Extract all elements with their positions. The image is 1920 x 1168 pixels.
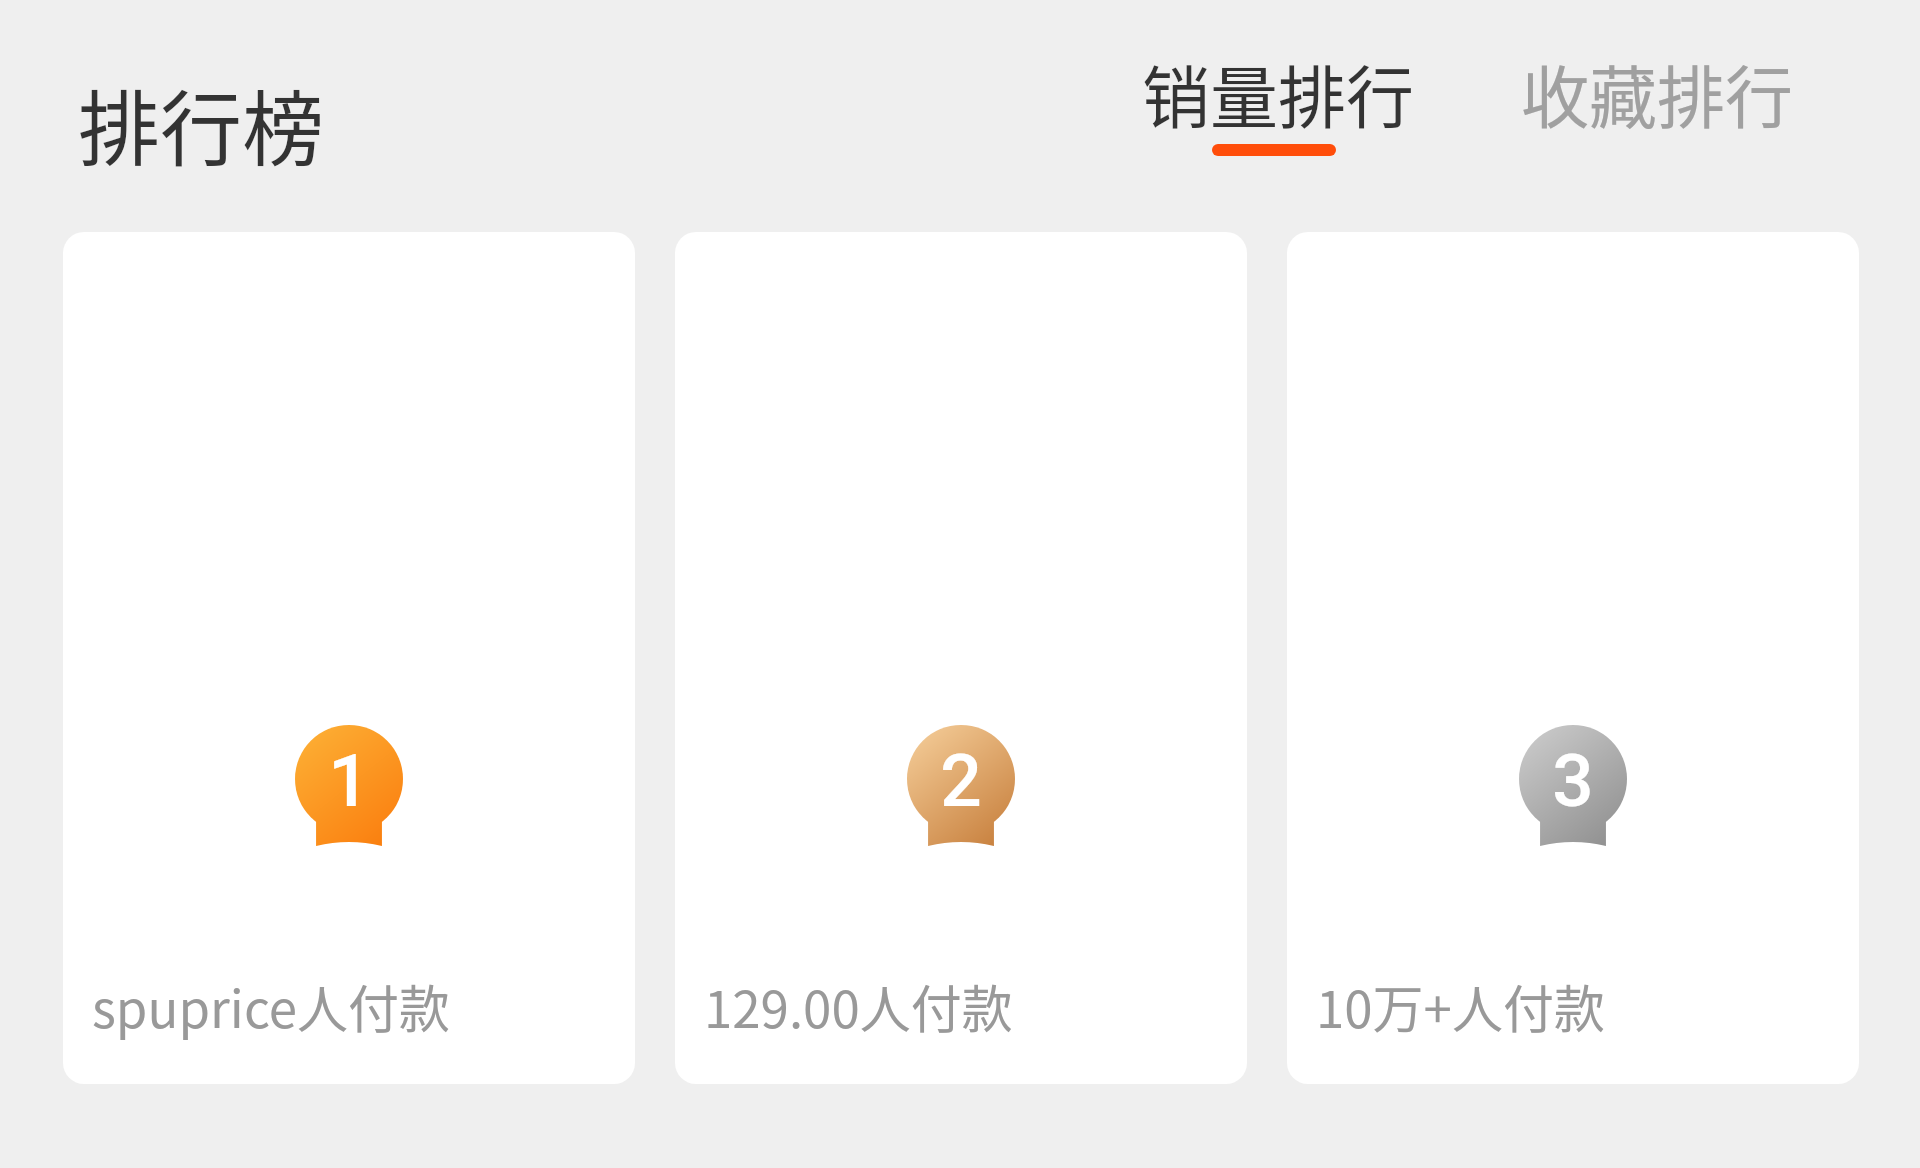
staticText: 2 bbox=[940, 738, 982, 824]
staticText: 3 bbox=[1552, 738, 1594, 824]
staticText: 1 bbox=[328, 738, 370, 824]
button[interactable]: 收藏排行 bbox=[1513, 44, 1802, 156]
staticText: 10万+人付款 bbox=[1316, 969, 1605, 1043]
staticText: 销量排行 bbox=[1142, 44, 1415, 142]
button[interactable]: Rank 1 medal bbox=[63, 232, 635, 1084]
button[interactable]: Rank 3 medal bbox=[1287, 232, 1859, 1084]
button[interactable]: 销量排行 bbox=[1134, 44, 1423, 156]
staticText: 排行榜 bbox=[78, 64, 325, 183]
staticText: spuprice人付款 bbox=[92, 969, 450, 1043]
button[interactable]: Rank 2 medal bbox=[675, 232, 1247, 1084]
other: Rank 1 medal bbox=[295, 725, 403, 846]
other: Rank 2 medal bbox=[907, 725, 1015, 846]
other: Rank 3 medal bbox=[1519, 725, 1627, 846]
staticText: 收藏排行 bbox=[1521, 44, 1794, 142]
staticText: 129.00人付款 bbox=[704, 969, 1013, 1043]
